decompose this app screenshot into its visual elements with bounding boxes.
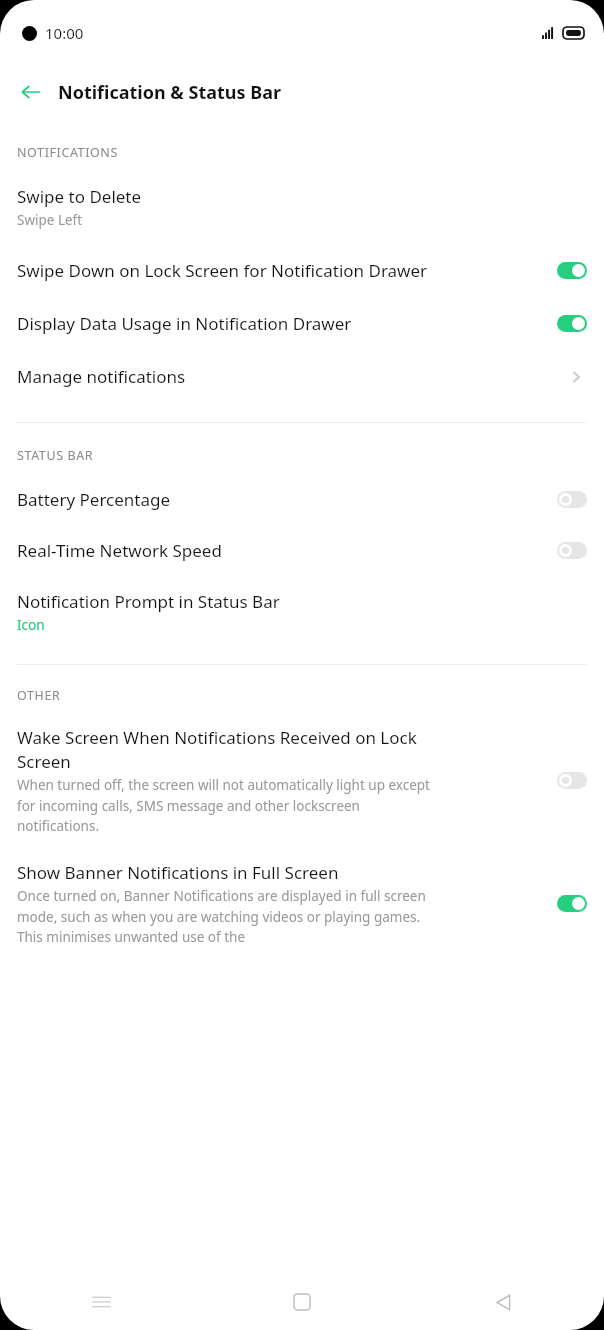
button[interactable]: Toggle on — [557, 315, 587, 332]
staticText: Notification Prompt in Status Bar — [17, 590, 280, 613]
button[interactable]: Toggle on — [557, 895, 587, 912]
button[interactable]: Battery Percentage — [0, 474, 604, 525]
staticText: Once turned on, Banner Notifications are… — [17, 887, 443, 946]
staticText: 10:00 — [45, 23, 84, 43]
button[interactable]: Swipe Down on Lock Screen for Notificati… — [0, 243, 604, 298]
staticText: Swipe Left — [17, 211, 83, 229]
staticText: Manage notifications — [17, 365, 186, 388]
button[interactable]: Toggle off — [557, 772, 587, 789]
staticText: Real-Time Network Speed — [17, 539, 222, 562]
staticText: Swipe Down on Lock Screen for Notificati… — [17, 259, 428, 282]
button[interactable]: Toggle on — [557, 262, 587, 279]
button[interactable]: Back — [480, 1279, 526, 1325]
button[interactable]: Notification Prompt in Status Bar — [0, 576, 604, 648]
button[interactable]: Real-Time Network Speed — [0, 525, 604, 576]
button[interactable]: Show Banner Notifications in Full Screen — [0, 847, 604, 946]
staticText: Wake Screen When Notifications Received … — [17, 726, 443, 773]
button[interactable]: Manage notifications — [0, 349, 604, 404]
button[interactable]: Toggle off — [557, 542, 587, 559]
staticText: Show Banner Notifications in Full Screen — [17, 861, 339, 884]
staticText: STATUS BAR — [17, 447, 94, 464]
staticText: NOTIFICATIONS — [17, 144, 118, 161]
staticText: Battery Percentage — [17, 488, 171, 511]
staticText: Swipe to Delete — [17, 185, 142, 208]
button[interactable]: Back — [14, 75, 48, 109]
button[interactable]: Swipe to Delete — [0, 171, 604, 243]
staticText: Notification & Status Bar — [58, 80, 282, 105]
other: Open — [565, 366, 587, 388]
button[interactable]: Wake Screen When Notifications Received … — [0, 714, 604, 847]
button[interactable]: Home — [279, 1279, 325, 1325]
staticText: OTHER — [17, 687, 61, 704]
button[interactable]: Recent apps — [78, 1279, 124, 1325]
button[interactable]: Display Data Usage in Notification Drawe… — [0, 298, 604, 349]
staticText: Display Data Usage in Notification Drawe… — [17, 312, 352, 335]
staticText: Icon — [17, 616, 45, 634]
staticText: When turned off, the screen will not aut… — [17, 776, 443, 835]
button[interactable]: Toggle off — [557, 491, 587, 508]
